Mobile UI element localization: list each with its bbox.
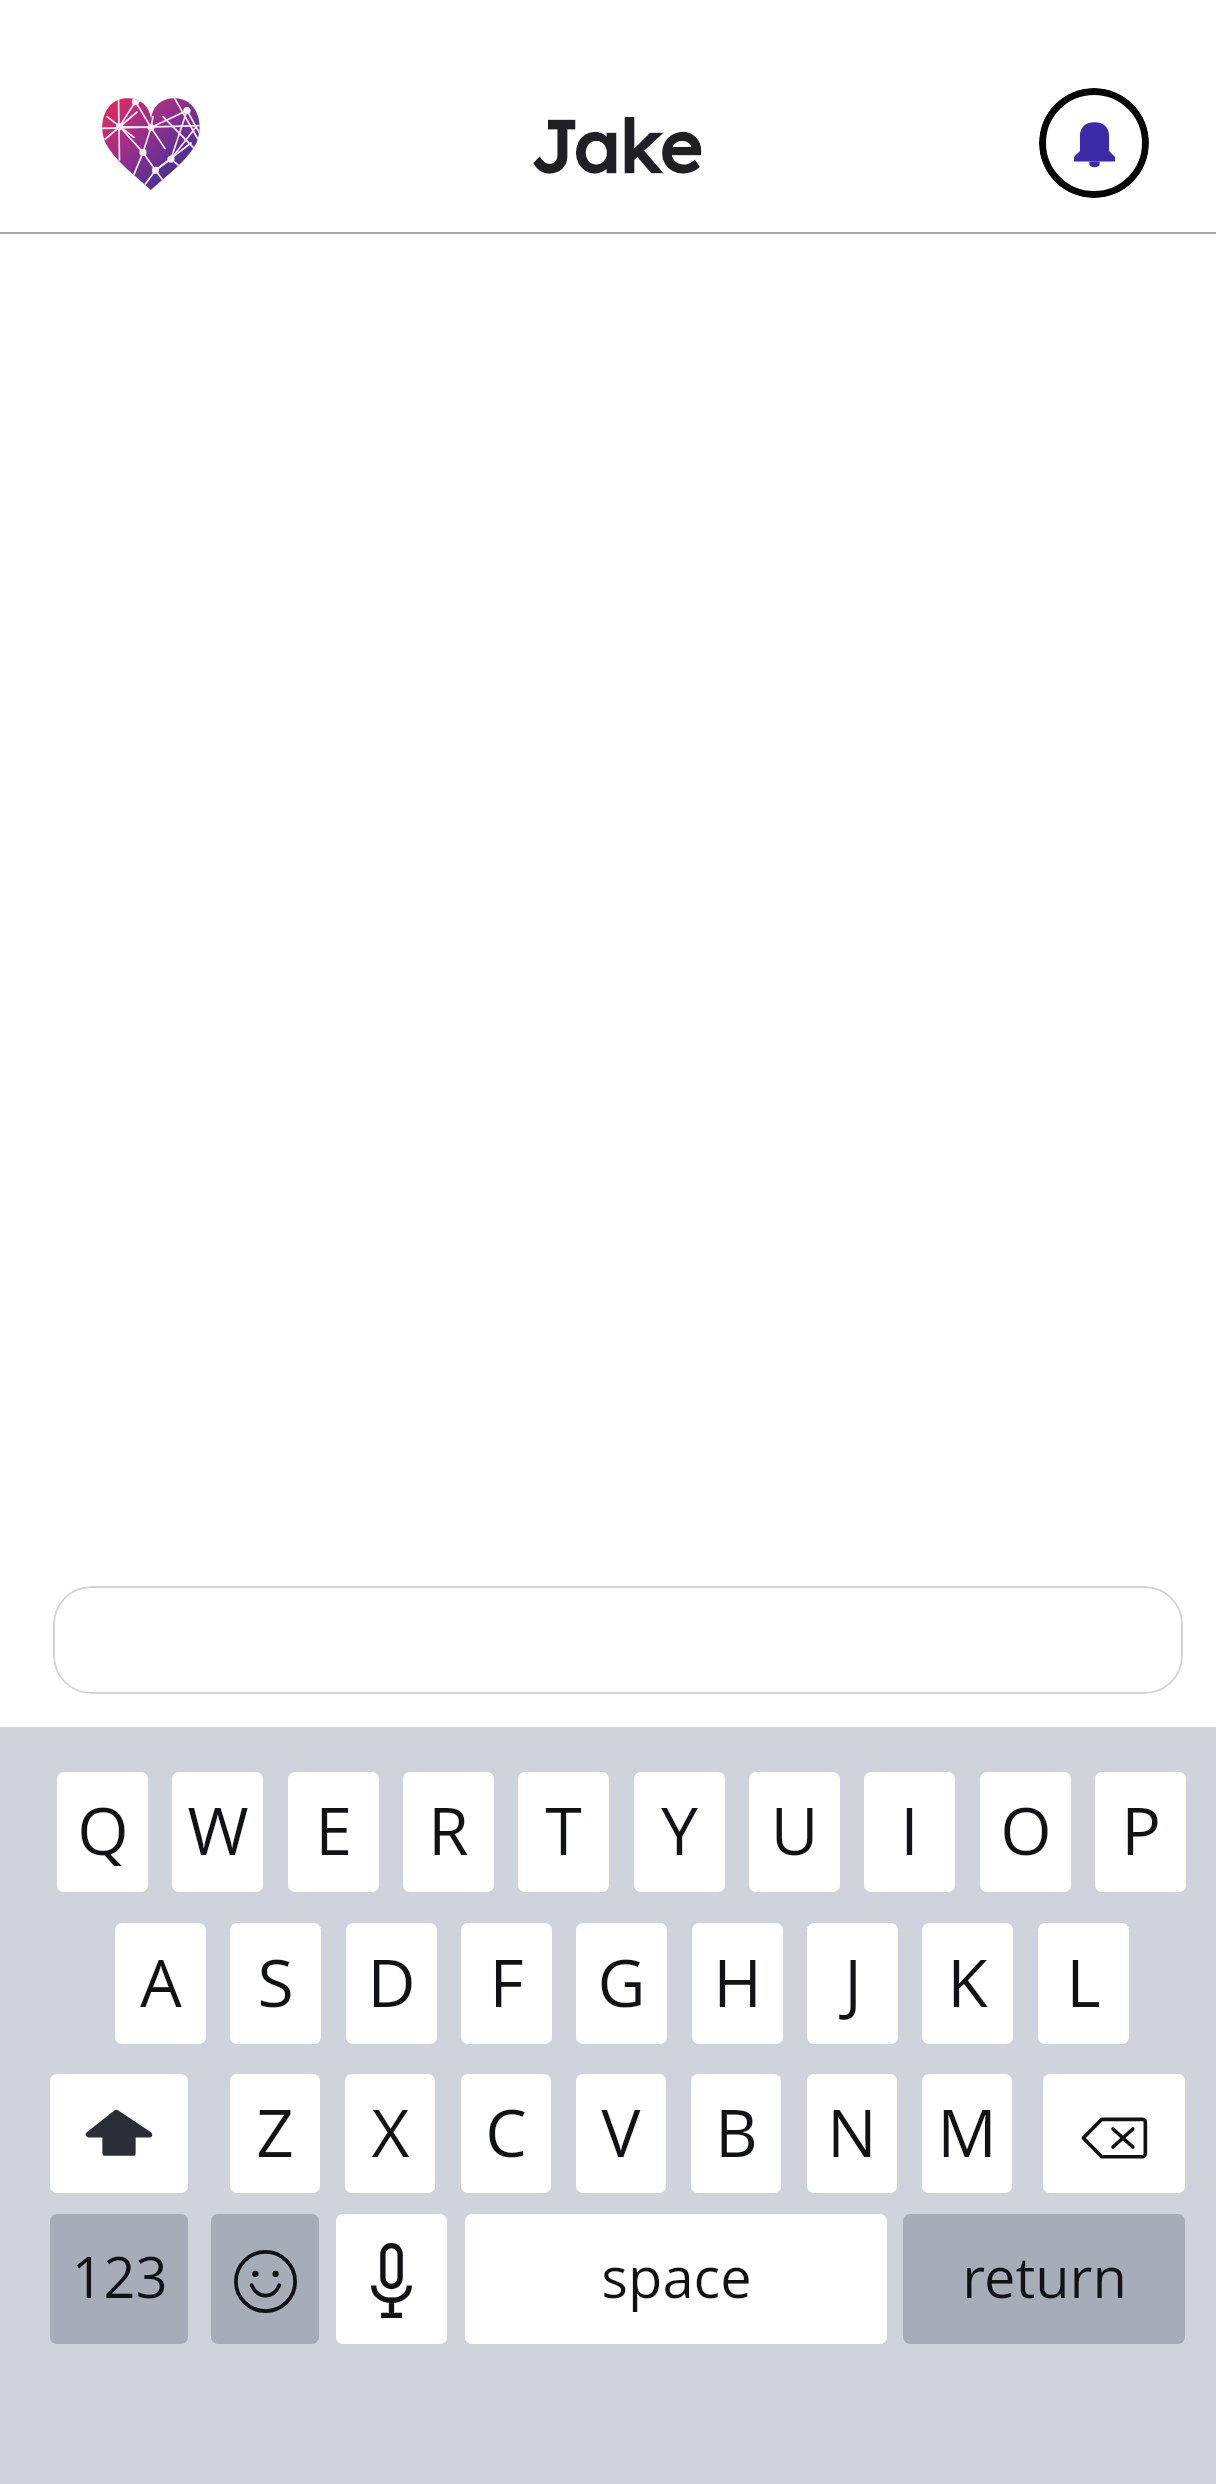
staticText: Y <box>661 1784 698 1874</box>
staticText: G <box>597 1936 646 2026</box>
button[interactable]: T <box>518 1772 609 1892</box>
staticText: L <box>1066 1936 1101 2026</box>
staticText: space <box>601 2238 752 2314</box>
button[interactable]: C <box>461 2074 551 2193</box>
button[interactable]: M <box>922 2074 1012 2193</box>
button[interactable]: Voice input <box>336 2214 447 2344</box>
button[interactable]: L <box>1038 1923 1129 2044</box>
staticText: M <box>937 2086 997 2176</box>
staticText: W <box>187 1784 249 1874</box>
button[interactable]: space <box>465 2214 887 2344</box>
button[interactable]: K <box>922 1923 1013 2044</box>
staticText: B <box>715 2086 758 2176</box>
button[interactable]: E <box>288 1772 379 1892</box>
button[interactable]: Home <box>101 96 201 190</box>
staticText: Jake <box>531 99 704 190</box>
staticText: R <box>428 1784 469 1874</box>
button[interactable]: return <box>903 2214 1185 2344</box>
button[interactable]: Notifications <box>1039 88 1149 198</box>
staticText: A <box>140 1936 182 2026</box>
staticText: D <box>367 1936 416 2026</box>
button[interactable]: U <box>749 1772 840 1892</box>
button[interactable]: H <box>692 1923 783 2044</box>
button[interactable]: 123 <box>50 2214 188 2344</box>
button[interactable]: P <box>1095 1772 1186 1892</box>
button[interactable]: O <box>980 1772 1071 1892</box>
button[interactable]: S <box>230 1923 321 2044</box>
staticText: Q <box>77 1784 129 1874</box>
button[interactable]: Q <box>57 1772 148 1892</box>
button[interactable]: R <box>403 1772 494 1892</box>
staticText: X <box>371 2086 410 2176</box>
button[interactable]: Z <box>230 2074 320 2193</box>
button[interactable]: F <box>461 1923 552 2044</box>
staticText: J <box>844 1936 862 2026</box>
staticText: I <box>900 1784 919 1874</box>
button[interactable]: V <box>576 2074 666 2193</box>
button[interactable]: J <box>807 1923 898 2044</box>
button[interactable]: W <box>172 1772 263 1892</box>
button[interactable]: Y <box>634 1772 725 1892</box>
button[interactable]: N <box>807 2074 897 2193</box>
button[interactable]: X <box>345 2074 435 2193</box>
staticText: V <box>601 2086 641 2176</box>
button[interactable]: G <box>576 1923 667 2044</box>
button[interactable]: I <box>864 1772 955 1892</box>
staticText: F <box>489 1936 524 2026</box>
staticText: K <box>947 1936 988 2026</box>
button[interactable]: Shift <box>50 2074 188 2193</box>
button[interactable]: A <box>115 1923 206 2044</box>
staticText: Z <box>256 2086 294 2176</box>
button[interactable]: Backspace <box>1043 2074 1185 2193</box>
staticText: 123 <box>71 2238 168 2314</box>
staticText: N <box>827 2086 877 2176</box>
staticText: S <box>257 1936 294 2026</box>
staticText: U <box>770 1784 819 1874</box>
button[interactable]: Message input <box>53 1586 1183 1694</box>
staticText: C <box>485 2086 527 2176</box>
staticText: return <box>962 2238 1127 2314</box>
staticText: T <box>545 1784 582 1874</box>
button[interactable]: D <box>346 1923 437 2044</box>
staticText: P <box>1121 1784 1161 1874</box>
staticText: H <box>713 1936 762 2026</box>
button[interactable]: B <box>691 2074 781 2193</box>
staticText: O <box>1000 1784 1052 1874</box>
staticText: E <box>315 1784 352 1874</box>
button[interactable]: Emoji <box>211 2214 319 2344</box>
